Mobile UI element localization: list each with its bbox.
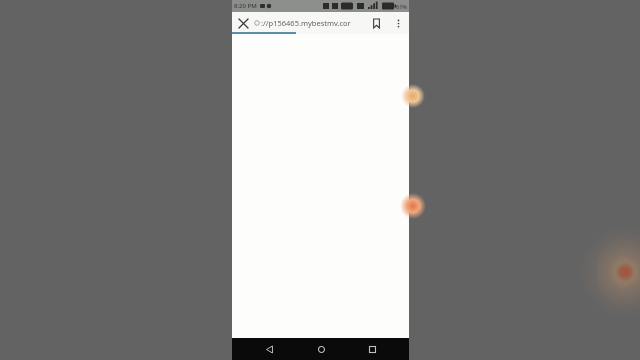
button[interactable]: Back bbox=[254, 338, 284, 360]
staticText: ://p156465.mybestmv.cor bbox=[261, 18, 351, 28]
staticText: 61% bbox=[396, 3, 407, 10]
button[interactable]: Bookmark bbox=[365, 12, 387, 34]
staticText: 8:20 PM bbox=[234, 2, 257, 10]
button[interactable]: More options bbox=[387, 12, 409, 34]
button[interactable]: ://p156465.mybestmv.cor bbox=[254, 12, 365, 34]
button[interactable]: Recent apps bbox=[357, 338, 387, 360]
button[interactable]: Close bbox=[232, 12, 254, 34]
button[interactable]: Home bbox=[306, 338, 336, 360]
